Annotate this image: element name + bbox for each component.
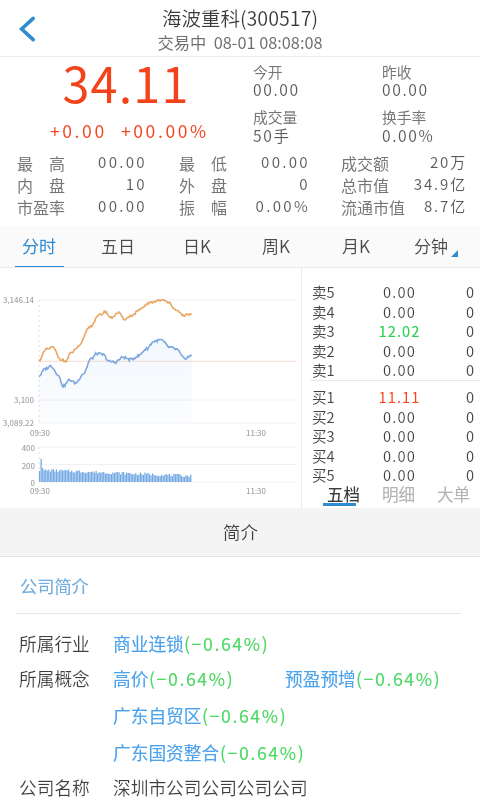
staticText: 0: [444, 406, 474, 425]
staticText: 20万: [390, 151, 467, 173]
staticText: 11:30: [196, 427, 266, 439]
staticText: 0: [0, 477, 35, 489]
staticText: 卖4: [312, 301, 335, 320]
staticText: 0.00%: [231, 195, 310, 217]
button[interactable]: 广东自贸区: [113, 702, 288, 728]
staticText: 大单: [437, 482, 471, 506]
staticText: 卖3: [312, 320, 335, 339]
staticText: 月K: [342, 233, 370, 258]
staticText: (−0.64%): [184, 630, 270, 656]
staticText: 0.00: [345, 464, 454, 483]
staticText: 0.00: [345, 340, 454, 359]
staticText: 广东自贸区: [113, 702, 202, 728]
staticText: 8.7亿: [406, 195, 467, 217]
button[interactable]: 公司名称: [0, 765, 480, 799]
button[interactable]: 公司简介: [0, 557, 480, 613]
button[interactable]: 明细: [371, 479, 426, 505]
staticText: (−0.64%): [202, 702, 288, 728]
staticText: 买2: [312, 406, 335, 425]
staticText: 成交额: [341, 151, 390, 173]
staticText: 50手: [253, 124, 291, 146]
button[interactable]: 卖4: [302, 301, 480, 320]
staticText: 卖5: [312, 281, 335, 300]
staticText: (−0.64%): [356, 665, 442, 691]
button[interactable]: 商业连锁: [113, 630, 270, 656]
button[interactable]: 分钟: [396, 226, 476, 268]
button[interactable]: 卖2: [302, 340, 480, 359]
staticText: 今开: [253, 61, 283, 82]
button[interactable]: 大单: [426, 479, 480, 505]
staticText: 0.00: [345, 406, 454, 425]
staticText: 换手率: [382, 106, 427, 127]
button[interactable]: 所属概念: [0, 656, 480, 690]
staticText: 外 盘: [179, 173, 231, 195]
button[interactable]: 买3: [302, 425, 480, 444]
staticText: 日K: [183, 233, 211, 258]
staticText: 0.00: [345, 425, 454, 444]
staticText: 0: [444, 386, 474, 405]
staticText: 买5: [312, 464, 335, 483]
button[interactable]: 高价: [113, 665, 235, 691]
staticText: 深圳市公司公司公司公司: [113, 774, 308, 800]
staticText: 内 盘: [17, 173, 67, 195]
button[interactable]: 分时: [0, 226, 78, 268]
staticText: 34.9亿: [390, 173, 467, 195]
staticText: 所属概念: [19, 665, 90, 691]
staticText: 交易中 08-01 08:08:08: [0, 30, 480, 54]
staticText: 0: [444, 340, 474, 359]
staticText: 高价: [113, 665, 149, 691]
staticText: 所属行业: [19, 630, 90, 656]
button[interactable]: 广东国资整合: [113, 739, 306, 765]
staticText: 00.00: [67, 151, 147, 173]
staticText: 09:30: [0, 485, 50, 497]
staticText: 商业连锁: [113, 630, 184, 656]
staticText: 3,146.14: [0, 294, 34, 306]
staticText: 3,100: [0, 394, 34, 406]
staticText: 分钟: [414, 233, 448, 258]
button[interactable]: 买2: [302, 406, 480, 425]
button[interactable]: 月K: [316, 226, 396, 268]
staticText: 分时: [22, 233, 56, 258]
staticText: +00.00%: [121, 118, 209, 143]
staticText: 卖2: [312, 340, 335, 359]
staticText: 买3: [312, 425, 335, 444]
button[interactable]: 买4: [302, 445, 480, 464]
staticText: 0: [444, 359, 474, 378]
staticText: 0.00: [345, 359, 454, 378]
staticText: 00.00: [382, 78, 429, 100]
button[interactable]: 五日: [78, 226, 157, 268]
staticText: 总市值: [341, 173, 390, 195]
staticText: 预盈预增: [285, 665, 356, 691]
button[interactable]: 卖1: [302, 359, 480, 378]
button[interactable]: 卖5: [302, 281, 480, 300]
button[interactable]: 买1: [302, 386, 480, 405]
button[interactable]: Back: [0, 1, 56, 57]
staticText: 10: [67, 173, 147, 195]
button[interactable]: 预盈预增: [285, 665, 442, 691]
staticText: 11:30: [196, 485, 266, 497]
staticText: 09:30: [0, 427, 50, 439]
staticText: 最 高: [17, 151, 67, 173]
staticText: (−0.64%): [149, 665, 235, 691]
staticText: 最 低: [179, 151, 231, 173]
staticText: +0.00: [50, 118, 107, 143]
button[interactable]: 日K: [157, 226, 236, 268]
staticText: 流通市值: [341, 195, 406, 217]
button[interactable]: 买5: [302, 464, 480, 483]
staticText: 卖1: [312, 359, 335, 378]
staticText: 成交量: [253, 106, 298, 127]
staticText: 买4: [312, 445, 335, 464]
staticText: 00.00: [67, 195, 147, 217]
staticText: 400: [0, 442, 35, 454]
button[interactable]: 周K: [236, 226, 316, 268]
button[interactable]: 卖3: [302, 320, 480, 339]
staticText: 买1: [312, 386, 335, 405]
button[interactable]: 所属行业: [0, 621, 480, 655]
staticText: 简介: [223, 519, 258, 544]
button[interactable]: 五档: [316, 479, 371, 505]
staticText: 明细: [382, 482, 416, 506]
staticText: 0: [444, 301, 474, 320]
staticText: 3,089.22: [0, 417, 34, 429]
staticText: 周K: [262, 233, 290, 258]
staticText: 0.00: [345, 281, 454, 300]
